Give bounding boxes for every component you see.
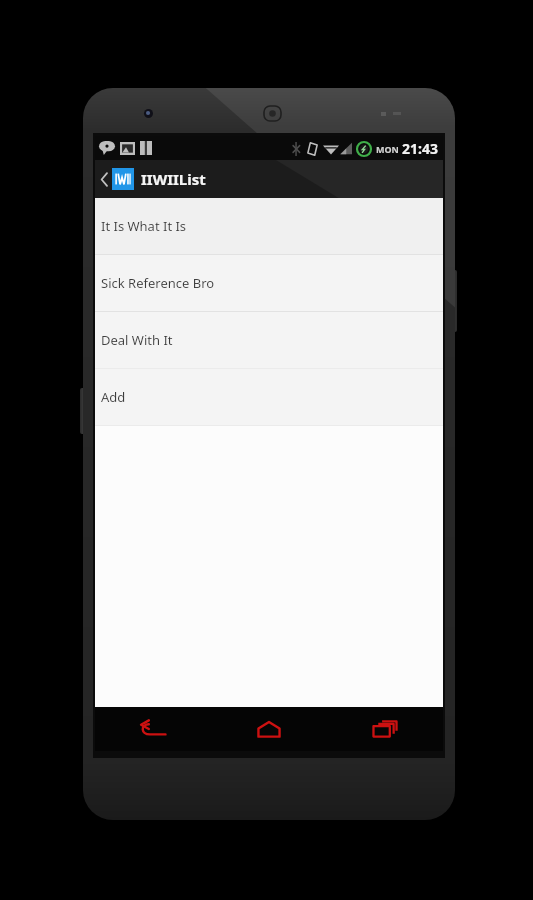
staticText: 21:43 [402, 139, 438, 158]
button[interactable]: Back [95, 707, 211, 751]
staticText: Deal With It [101, 331, 173, 349]
staticText: MON [376, 143, 399, 155]
button[interactable]: Sick Reference Bro [95, 255, 443, 311]
button[interactable]: Recent apps [327, 707, 443, 751]
button[interactable]: It Is What It Is [95, 198, 443, 254]
staticText: IIWIIList [141, 169, 206, 189]
button[interactable]: Add [95, 369, 443, 425]
button[interactable]: Home [211, 707, 327, 751]
button[interactable]: Deal With It [95, 312, 443, 368]
button[interactable]: Navigate up [95, 160, 216, 198]
other: Navigate up [100, 172, 109, 187]
staticText: Sick Reference Bro [101, 274, 215, 292]
staticText: It Is What It Is [101, 217, 187, 235]
staticText: Add [101, 388, 126, 406]
